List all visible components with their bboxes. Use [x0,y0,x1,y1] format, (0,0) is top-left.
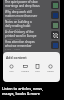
button[interactable]: Camera [20,64,30,73]
staticText: Library [47,70,54,73]
button[interactable]: How attention shapes [3,40,60,50]
staticText: daily reading habit [5,24,31,28]
button[interactable]: Notes on building a [3,20,60,30]
staticText: Notes on building a [5,20,32,24]
staticText: mornings and deep focus [5,4,40,8]
staticText: Add content [6,55,27,60]
staticText: essays, books & more [2,91,40,96]
staticText: what we remember [5,44,32,48]
staticText: 6 min · News [5,48,20,50]
staticText: The quiet power of slow [5,0,38,4]
staticText: A short history of the [5,30,34,34]
staticText: Camera [21,70,29,73]
staticText: How attention shapes [5,40,35,44]
staticText: printed word in Europe [5,34,37,38]
staticText: Why deep work still [5,10,32,14]
button[interactable]: Files [34,64,41,73]
staticText: 15 min · Blog [5,28,21,30]
staticText: matters more than ever [5,14,38,18]
staticText: 12 min · Essay [5,8,22,10]
button[interactable]: Link [8,64,15,73]
staticText: 8 min · Article [5,18,21,20]
staticText: Listen to articles, news, [2,86,44,91]
staticText: Files [35,70,40,73]
button[interactable]: A short history of the [3,30,60,40]
staticText: 21 min · Book [5,38,21,40]
button[interactable]: Library [46,64,55,73]
staticText: Link [9,70,14,73]
button[interactable]: The quiet power of slow [3,0,60,10]
button[interactable]: Why deep work still [3,10,60,20]
